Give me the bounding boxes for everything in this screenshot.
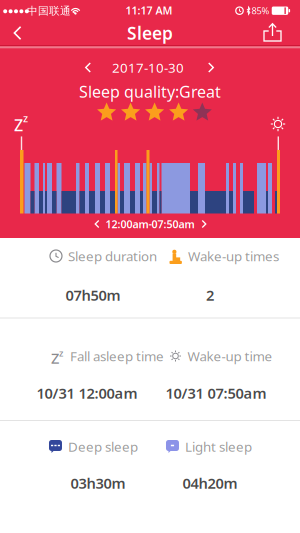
- staticText: Deep sleep: [68, 438, 138, 455]
- staticText: 04h20m: [182, 473, 237, 493]
- staticText: Z: [14, 114, 23, 136]
- staticText: Light sleep: [185, 438, 252, 455]
- staticText: z: [59, 347, 63, 359]
- button[interactable]: [255, 16, 289, 49]
- staticText: 2017-10-30: [112, 59, 184, 76]
- staticText: Sleep quality:Great: [79, 81, 221, 102]
- staticText: 10/31 12:00am: [36, 383, 137, 403]
- staticText: Fall asleep time: [70, 347, 164, 365]
- staticText: 11:17 AM: [125, 3, 172, 17]
- staticText: 2: [206, 285, 214, 305]
- staticText: 03h30m: [70, 473, 125, 493]
- staticText: 12:00am-07:50am: [105, 217, 194, 231]
- staticText: Wake-up time: [187, 347, 272, 365]
- staticText: z: [23, 111, 28, 125]
- button[interactable]: [0, 16, 35, 49]
- button[interactable]: 2017-10-30: [100, 55, 196, 79]
- button[interactable]: [194, 214, 214, 234]
- staticText: Z: [51, 348, 59, 368]
- staticText: Sleep duration: [68, 247, 157, 265]
- staticText: 中国联通: [27, 4, 71, 17]
- staticText: Wake-up times: [188, 247, 279, 265]
- staticText: 85%: [251, 4, 269, 17]
- button[interactable]: [74, 53, 102, 81]
- button[interactable]: [197, 53, 225, 81]
- button[interactable]: [87, 214, 107, 234]
- staticText: 10/31 07:50am: [165, 383, 266, 403]
- staticText: 07h50m: [65, 285, 120, 305]
- staticText: Sleep: [127, 21, 173, 44]
